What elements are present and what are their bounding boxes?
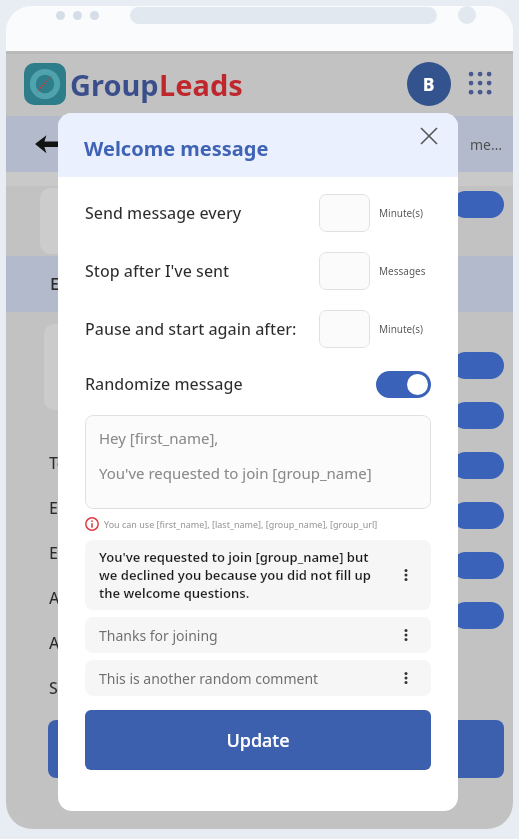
staticText: Au <box>49 587 70 609</box>
staticText: En <box>49 542 68 564</box>
button[interactable]: More options <box>395 624 417 646</box>
staticText: me… <box>470 135 503 154</box>
staticText: Welcome message <box>84 135 269 162</box>
button[interactable]: Thanks for joining <box>85 617 431 653</box>
staticText: Leads <box>159 65 243 104</box>
button[interactable]: Stop after I've sent <box>85 251 431 291</box>
button[interactable]: Update <box>85 710 431 770</box>
staticText: Update <box>226 728 290 753</box>
staticText: Stop after I've sent <box>85 260 230 282</box>
button[interactable]: More options <box>395 667 417 689</box>
staticText: Se <box>49 677 67 699</box>
staticText: Thanks for joining <box>99 626 385 645</box>
button[interactable]: Randomize message <box>85 365 431 403</box>
staticText: Group <box>70 65 159 104</box>
button[interactable]: Pause and start again after: <box>85 309 431 349</box>
staticText: Messages <box>379 264 426 278</box>
staticText: You can use [first_name], [last_name], [… <box>104 518 378 530</box>
staticText: Minute(s) <box>379 322 424 336</box>
staticText: Hey [first_name], <box>99 428 219 448</box>
staticText: Randomize message <box>85 373 243 395</box>
staticText: To <box>49 452 67 474</box>
button[interactable]: Hey [first_name], <box>85 415 431 509</box>
staticText: En <box>50 273 70 295</box>
staticText: Send message every <box>85 202 242 224</box>
staticText: Minute(s) <box>379 206 424 220</box>
staticText: Pause and start again after: <box>85 318 297 340</box>
staticText: This is another random comment <box>99 669 385 688</box>
button[interactable]: Send message every <box>85 193 431 233</box>
staticText: En <box>49 497 68 519</box>
staticText: Ap <box>49 632 70 654</box>
staticText: You've requested to join [group_name] <box>99 463 372 483</box>
button[interactable]: Close <box>414 121 444 151</box>
button[interactable]: This is another random comment <box>85 660 431 696</box>
button[interactable]: More options <box>395 564 417 586</box>
staticText: You've requested to join [group_name] bu… <box>99 548 385 602</box>
button[interactable]: You've requested to join [group_name] bu… <box>85 540 431 610</box>
staticText: B <box>423 73 435 96</box>
